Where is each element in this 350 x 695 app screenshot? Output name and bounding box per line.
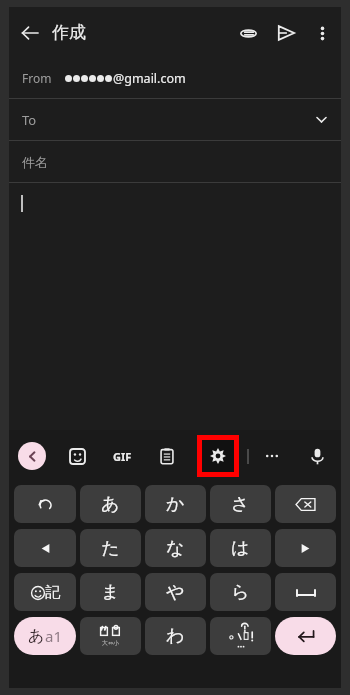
staticText: GIF — [113, 449, 132, 464]
staticText: 件名 — [22, 154, 48, 170]
staticText: な — [166, 537, 185, 560]
staticText: や — [166, 581, 185, 604]
button[interactable]: Move right — [275, 529, 336, 567]
button[interactable]: GIF — [107, 441, 137, 471]
button[interactable]: Punctuation — [210, 617, 271, 655]
button[interactable]: Switch input mode — [14, 617, 76, 655]
button[interactable]: あ — [80, 485, 141, 523]
button[interactable]: Send — [267, 14, 305, 52]
button[interactable]: 件名 — [9, 141, 341, 182]
staticText: は — [231, 537, 250, 560]
staticText: 記 — [45, 583, 60, 602]
staticText: 大⇔小 — [102, 639, 120, 647]
staticText: ま — [101, 581, 120, 604]
staticText: To — [22, 111, 37, 129]
staticText: @gmail.com — [113, 70, 186, 87]
staticText: さ — [231, 493, 250, 516]
button[interactable]: Delete — [275, 485, 336, 523]
button[interactable]: Voice input — [302, 441, 332, 471]
staticText: か — [166, 493, 185, 516]
button[interactable]: Enter — [275, 617, 336, 655]
staticText: From — [22, 70, 52, 86]
button[interactable]: Move left — [14, 529, 76, 567]
staticText: わ — [166, 625, 185, 648]
button[interactable]: Emoji and symbols — [14, 573, 76, 611]
button[interactable]: Undo — [14, 485, 76, 523]
button[interactable]: Clipboard — [152, 441, 182, 471]
button[interactable]: さ — [210, 485, 271, 523]
button[interactable]: な — [145, 529, 206, 567]
staticText: あ — [101, 493, 120, 516]
button[interactable]: Dakuten and case — [80, 617, 141, 655]
button[interactable]: Settings — [202, 440, 234, 472]
staticText: た — [101, 537, 120, 560]
button[interactable]: ま — [80, 573, 141, 611]
button[interactable]: わ — [145, 617, 206, 655]
button[interactable]: ら — [210, 573, 271, 611]
button[interactable]: Stickers — [62, 441, 92, 471]
button[interactable]: More tools — [257, 441, 287, 471]
button[interactable]: Back — [9, 12, 51, 54]
button[interactable]: More options — [305, 16, 339, 50]
button[interactable]: や — [145, 573, 206, 611]
button[interactable]: Collapse toolbar — [18, 442, 46, 470]
staticText: ら — [231, 581, 250, 604]
button[interactable]: は — [210, 529, 271, 567]
button[interactable]: To — [9, 99, 341, 140]
staticText: a1 — [45, 626, 62, 646]
button[interactable]: Attach file — [229, 14, 267, 52]
button[interactable]: Space — [275, 573, 336, 611]
button[interactable]: た — [80, 529, 141, 567]
staticText: 作成 — [52, 22, 86, 43]
button[interactable]: From — [9, 58, 341, 98]
button[interactable]: か — [145, 485, 206, 523]
staticText: あ — [28, 626, 45, 646]
